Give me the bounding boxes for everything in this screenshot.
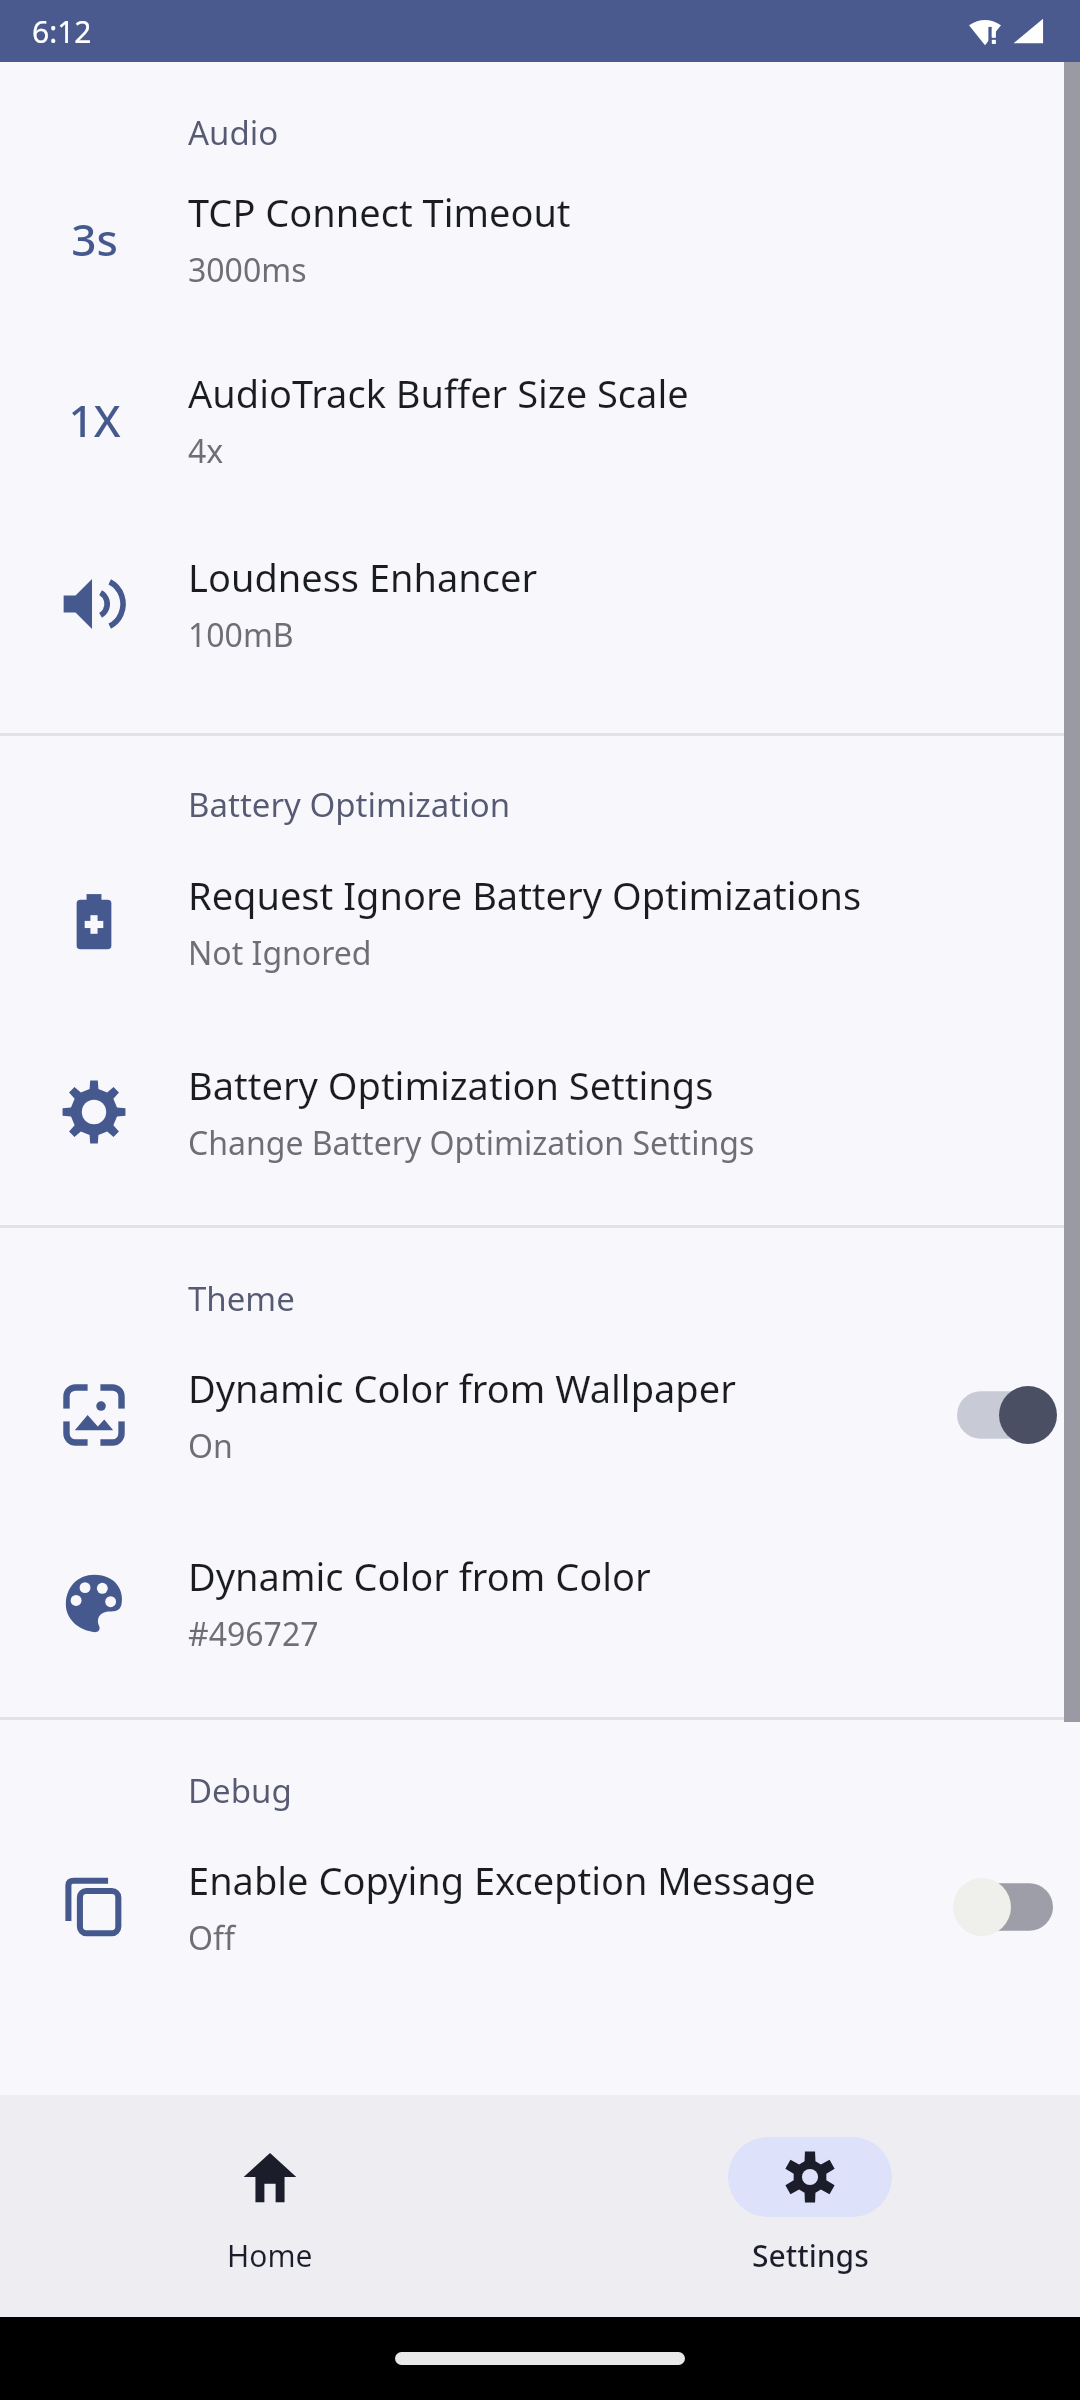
button[interactable]: Enable Copying Exception Message [0, 1813, 1080, 2001]
staticText: AudioTrack Buffer Size Scale [188, 367, 689, 419]
button[interactable]: Toggle on [957, 1386, 1053, 1444]
staticText: Battery Optimization [188, 782, 511, 827]
staticText: Battery Optimization Settings [188, 1059, 714, 1111]
staticText: Audio [188, 110, 279, 155]
staticText: Loudness Enhancer [188, 551, 538, 603]
button[interactable]: Settings [540, 2095, 1080, 2317]
staticText: 6:12 [32, 11, 92, 52]
button[interactable]: Home [0, 2095, 540, 2317]
button[interactable]: 1X [0, 323, 1080, 516]
staticText: #496727 [188, 1612, 319, 1656]
staticText: 3s [71, 209, 118, 269]
staticText: 4x [188, 429, 224, 473]
staticText: Enable Copying Exception Message [188, 1854, 816, 1906]
staticText: Change Battery Optimization Settings [188, 1121, 755, 1165]
button[interactable]: 3s [0, 155, 1080, 323]
staticText: Off [188, 1916, 236, 1960]
staticText: Settings [752, 2235, 869, 2276]
staticText: 1X [68, 390, 121, 450]
button[interactable]: Loudness Enhancer [0, 516, 1080, 691]
button[interactable]: Dynamic Color from Wallpaper [0, 1321, 1080, 1509]
button[interactable]: Toggle off [957, 1878, 1053, 1936]
staticText: Theme [188, 1276, 295, 1321]
staticText: Request Ignore Battery Optimizations [188, 869, 862, 921]
button[interactable]: Request Ignore Battery Optimizations [0, 827, 1080, 1017]
staticText: Home [227, 2235, 313, 2276]
staticText: Dynamic Color from Wallpaper [188, 1362, 736, 1414]
staticText: Dynamic Color from Color [188, 1550, 651, 1602]
staticText: Not Ignored [188, 931, 372, 975]
button[interactable]: Dynamic Color from Color [0, 1509, 1080, 1697]
staticText: 100mB [188, 613, 294, 657]
staticText: TCP Connect Timeout [188, 186, 571, 238]
staticText: 3000ms [188, 248, 307, 292]
staticText: On [188, 1424, 233, 1468]
button[interactable]: Battery Optimization Settings [0, 1017, 1080, 1207]
staticText: Debug [188, 1768, 292, 1813]
